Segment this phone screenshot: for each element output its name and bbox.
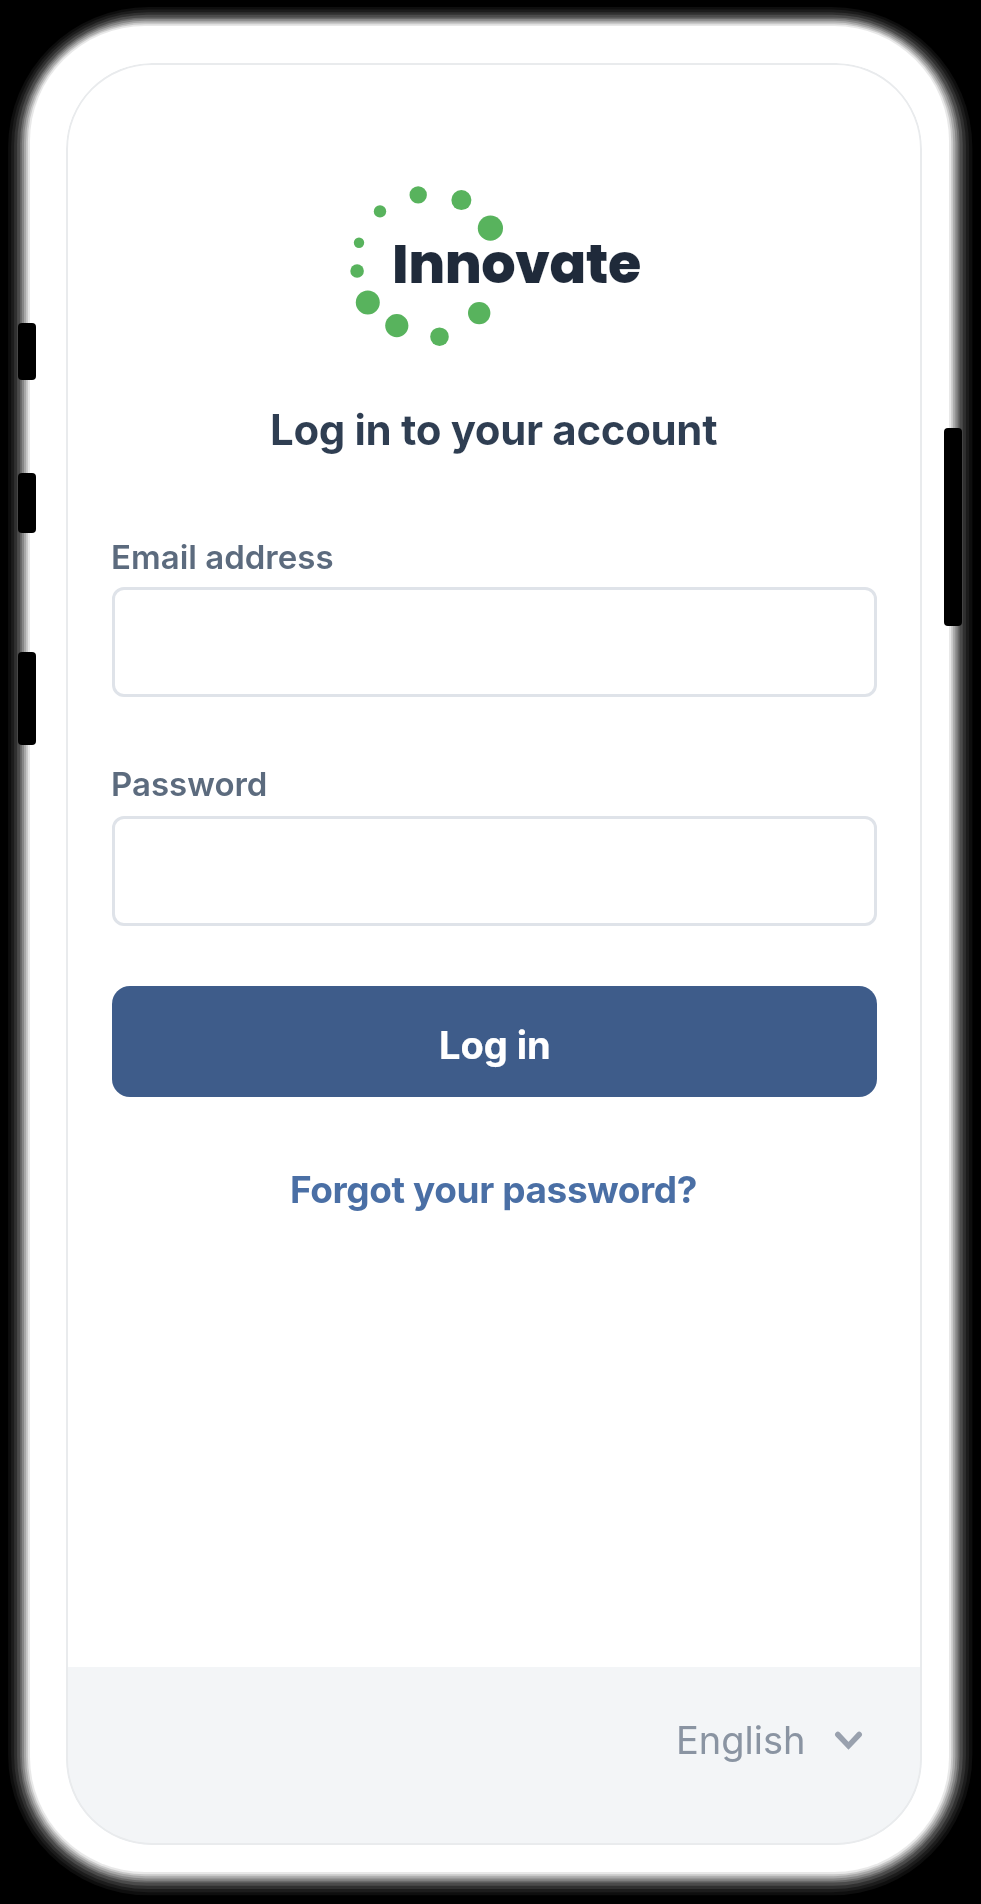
staticText: English (676, 1717, 806, 1763)
staticText: Password (111, 764, 268, 804)
staticText: Email address (111, 537, 334, 577)
button[interactable]: Forgot your password? (290, 1167, 698, 1212)
staticText: Innovate (392, 226, 641, 302)
staticText: Log in (439, 1022, 551, 1068)
button[interactable] (112, 587, 877, 697)
button[interactable]: Log in (112, 986, 877, 1097)
button[interactable] (112, 816, 877, 926)
staticText: Log in to your account (270, 404, 718, 455)
button[interactable]: English (676, 1717, 862, 1763)
